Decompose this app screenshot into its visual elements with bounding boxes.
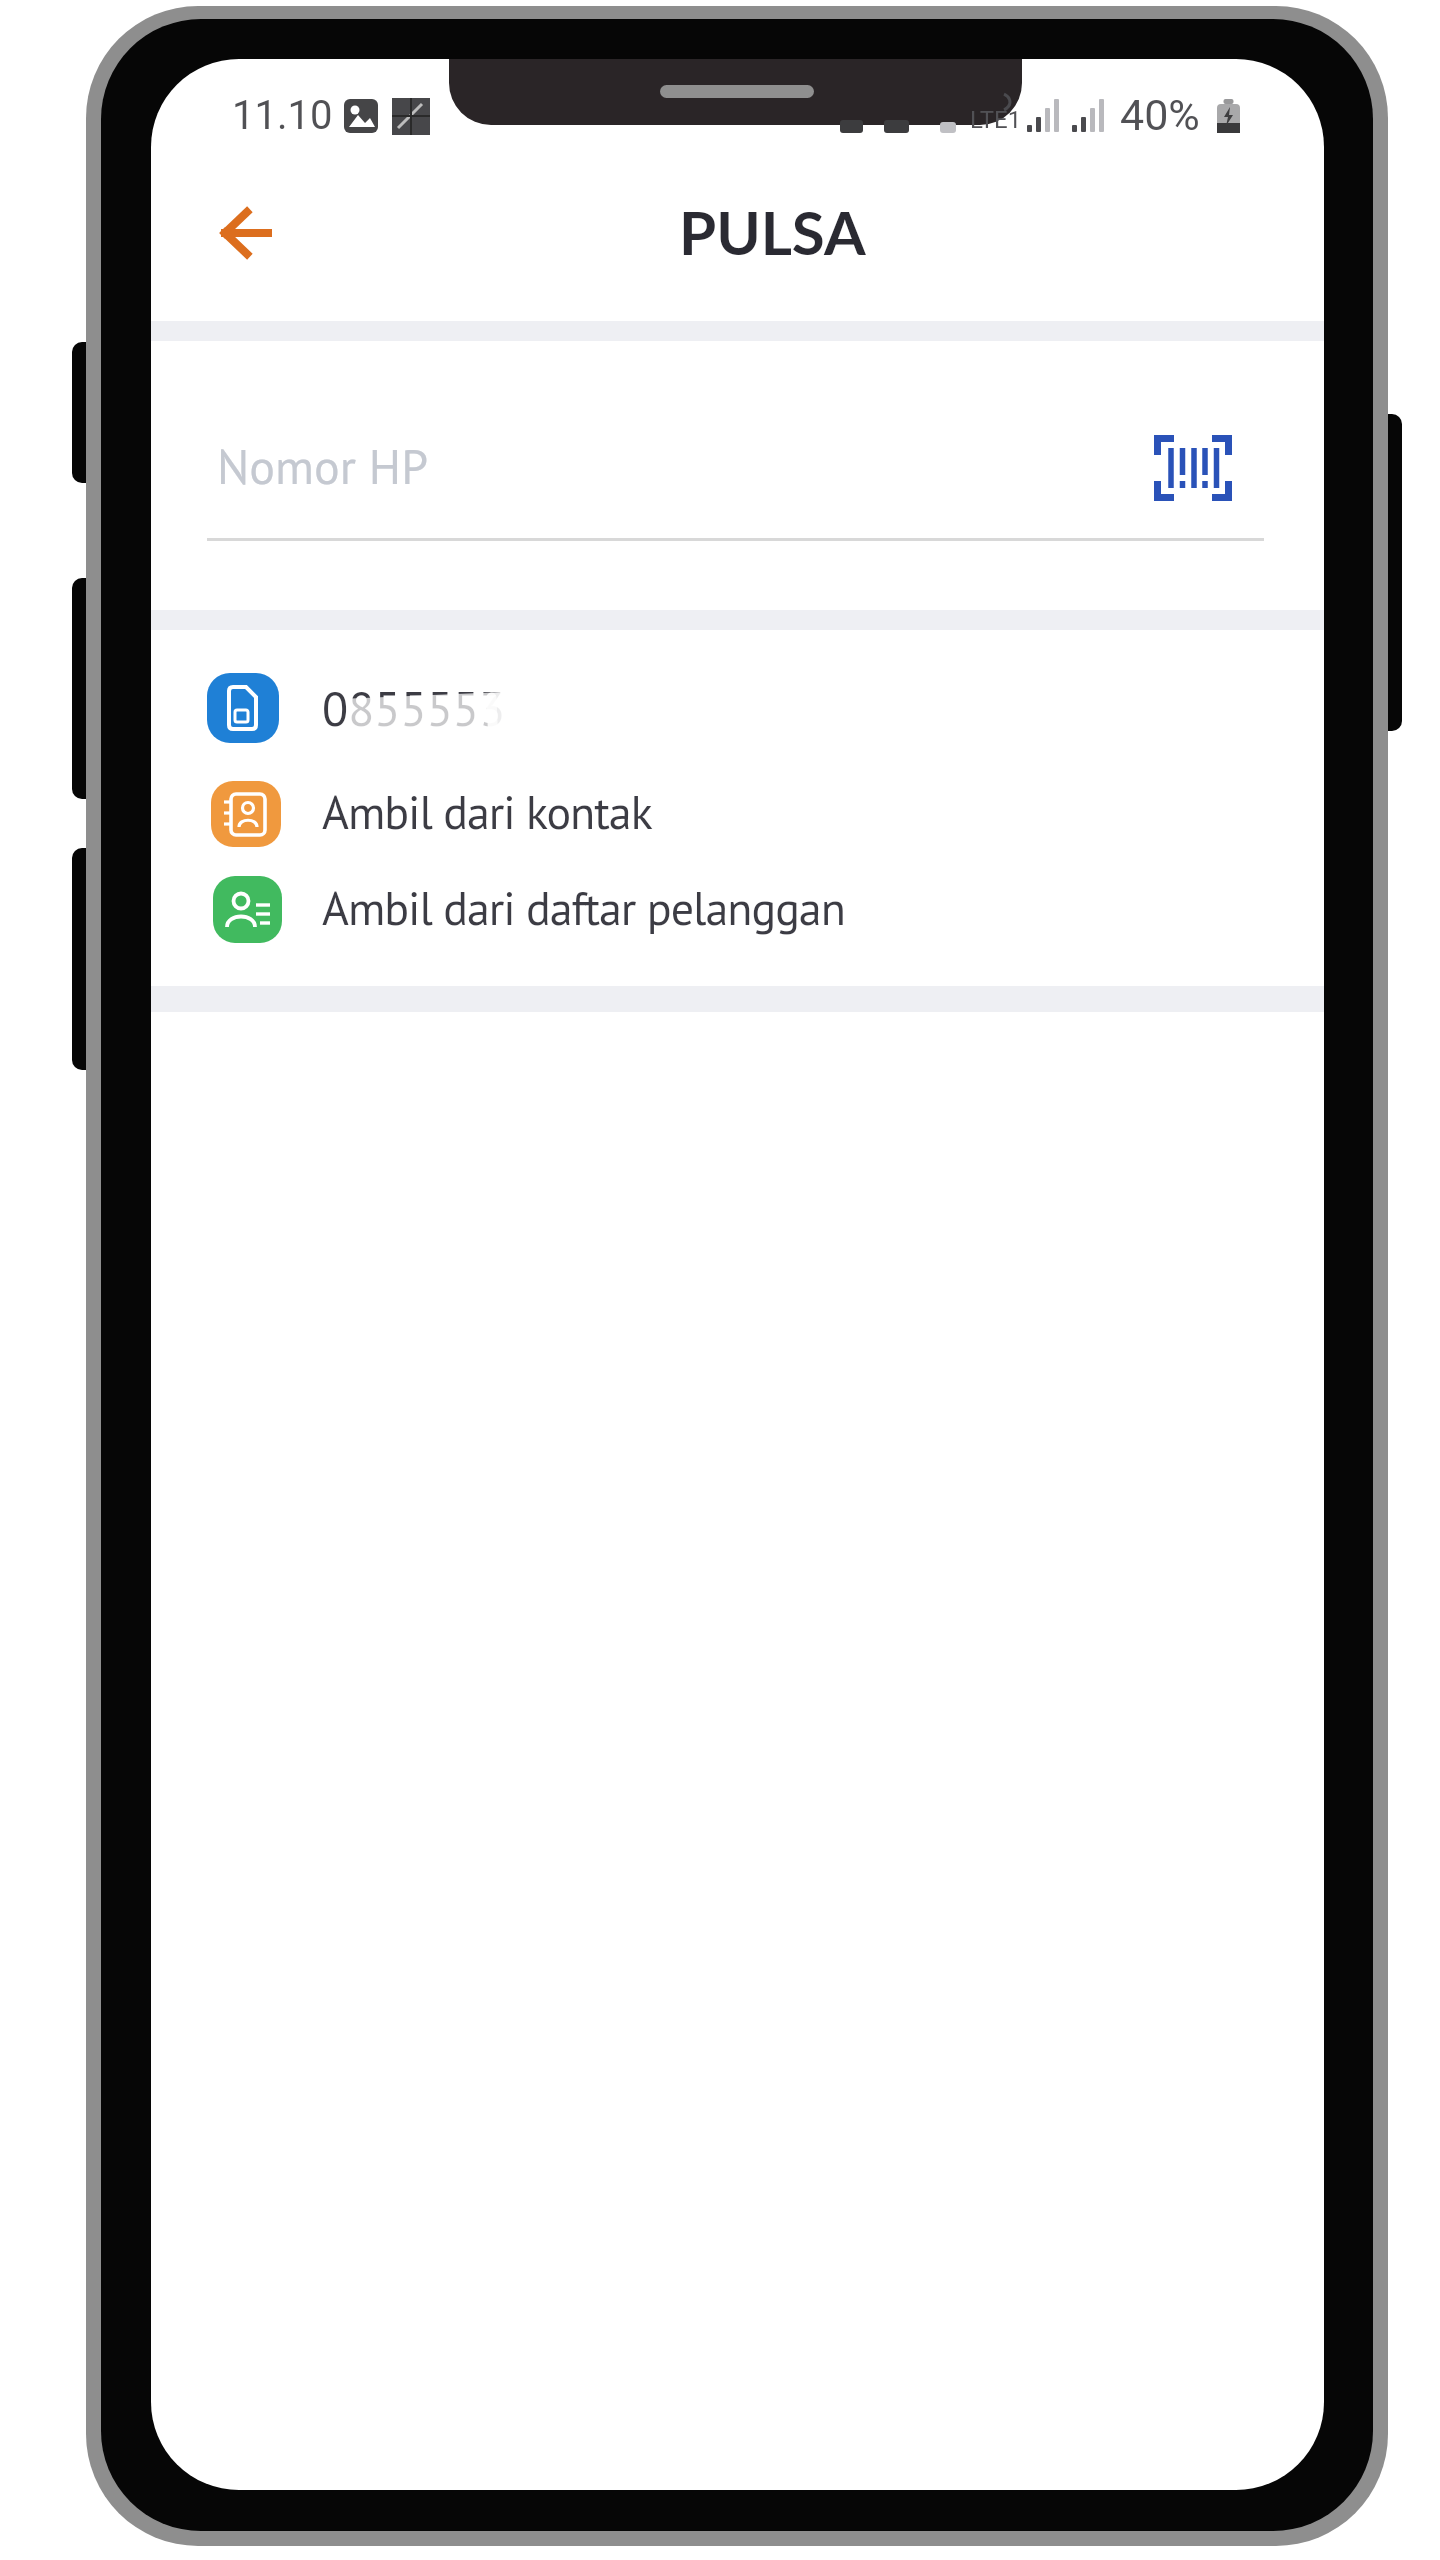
button[interactable]: Ambil dari daftar pelanggan: [151, 858, 1324, 958]
staticText: 11.10: [232, 92, 333, 138]
staticText: LTE1: [970, 106, 1022, 134]
staticText: 0855553: [322, 677, 506, 739]
staticText: Nomor HP: [217, 435, 428, 497]
button[interactable]: 0855553: [151, 658, 1324, 758]
staticText: Ambil dari daftar pelanggan: [322, 878, 845, 938]
button[interactable]: [200, 187, 292, 279]
staticText: Ambil dari kontak: [322, 782, 652, 842]
button[interactable]: [1140, 420, 1246, 516]
staticText: PULSA: [679, 196, 866, 266]
staticText: 40%: [1120, 90, 1200, 136]
button[interactable]: Ambil dari kontak: [151, 762, 1324, 862]
button[interactable]: Nomor HP: [207, 428, 1137, 504]
